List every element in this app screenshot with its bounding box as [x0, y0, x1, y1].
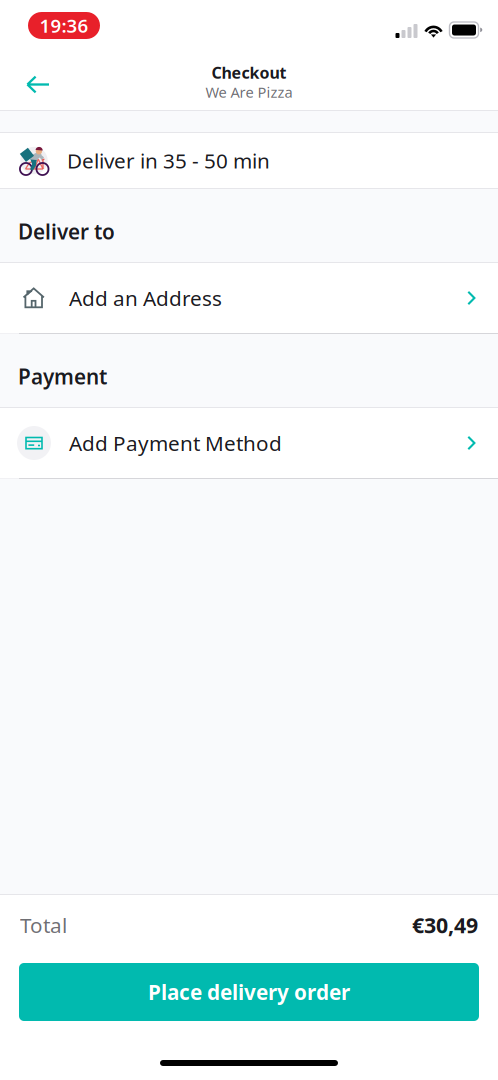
staticText: Payment	[18, 362, 107, 390]
staticText: Total	[20, 911, 67, 939]
button[interactable]: Add Payment Method	[0, 408, 498, 478]
staticText: €30,49	[412, 910, 478, 940]
staticText: Add Payment Method	[69, 429, 282, 457]
staticText: Add an Address	[69, 284, 222, 312]
staticText: 19:36	[39, 13, 88, 38]
staticText: Checkout	[211, 62, 286, 83]
button[interactable]: Add an Address	[0, 263, 498, 333]
button[interactable]: Back	[8, 54, 68, 114]
staticText: We Are Pizza	[205, 82, 292, 102]
staticText: Place delivery order	[148, 978, 350, 1006]
button[interactable]: Place delivery order	[19, 963, 479, 1021]
staticText: Deliver in 35 - 50 min	[67, 146, 270, 174]
staticText: Deliver to	[18, 217, 115, 245]
